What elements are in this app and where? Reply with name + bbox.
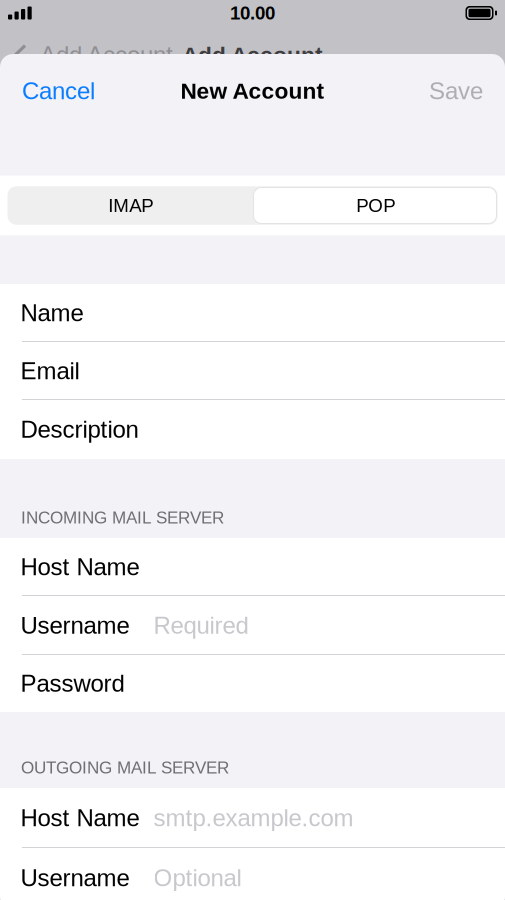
button[interactable]: Email <box>0 342 505 400</box>
button[interactable]: Cancel <box>0 64 111 118</box>
button[interactable]: Description <box>0 400 505 459</box>
staticText: Host Name <box>20 554 139 580</box>
staticText: OUTGOING MAIL SERVER <box>21 758 229 777</box>
staticText: Add Account <box>40 42 173 68</box>
staticText: 10.00 <box>230 3 275 23</box>
staticText: Save <box>429 78 483 104</box>
staticText: INCOMING MAIL SERVER <box>21 508 224 527</box>
staticText: IMAP <box>108 195 153 216</box>
staticText: Password <box>20 670 124 697</box>
staticText: Email <box>20 358 79 384</box>
button[interactable]: POP <box>254 186 497 225</box>
staticText: Cancel <box>22 78 95 104</box>
staticText: Username <box>20 865 129 891</box>
staticText: POP <box>356 195 395 216</box>
button[interactable]: Save <box>413 64 505 118</box>
button[interactable]: IMAP <box>7 186 254 225</box>
button[interactable]: Username <box>0 596 505 655</box>
staticText: Required <box>153 612 248 639</box>
button[interactable]: Name <box>0 284 505 342</box>
staticText: smtp.example.com <box>153 805 353 831</box>
button[interactable]: Host Name <box>0 788 505 848</box>
staticText: Host Name <box>20 805 139 831</box>
staticText: Username <box>20 612 129 639</box>
staticText: Description <box>20 416 138 443</box>
staticText: Name <box>20 300 83 326</box>
button[interactable]: Username <box>0 848 505 900</box>
staticText: Optional <box>153 865 241 891</box>
staticText: New Account <box>180 78 324 104</box>
button[interactable]: Password <box>0 655 505 712</box>
staticText: Add Account <box>182 42 323 68</box>
button[interactable]: Host Name <box>0 538 505 596</box>
